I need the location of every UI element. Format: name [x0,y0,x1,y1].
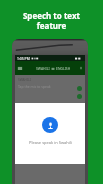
staticText: Speech to text feature [0,10,103,31]
staticText: SWAHILI [36,66,50,71]
staticText: Please speak in Swahili [29,140,72,145]
staticText: Tap the mic to speak [18,84,51,89]
button[interactable]: More options [79,66,83,70]
button[interactable]: Copy [77,94,82,99]
staticText: ENGLISH [56,66,71,71]
button[interactable]: Play [77,86,82,91]
staticText: 1:05 PM [17,56,30,61]
button[interactable]: Microphone [42,117,58,133]
button[interactable]: Menu [17,65,23,71]
staticText: SWAHILI [18,78,31,82]
